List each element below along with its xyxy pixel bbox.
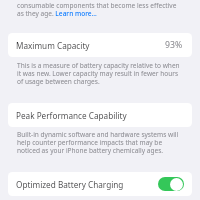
staticText: consumable components that become less e… xyxy=(17,2,177,18)
button[interactable]: Optimized Battery Charging, on xyxy=(158,177,184,191)
staticText: Maximum Capacity xyxy=(16,40,90,51)
button[interactable]: Peak Performance Capability xyxy=(8,103,192,127)
staticText: Built-in dynamic software and hardware s… xyxy=(17,131,182,155)
button[interactable]: Maximum Capacity xyxy=(8,33,192,57)
staticText: 93% xyxy=(165,39,183,51)
button[interactable]: Optimized Battery Charging xyxy=(8,172,192,196)
staticText: Peak Performance Capability xyxy=(16,110,127,121)
staticText: Optimized Battery Charging xyxy=(16,179,124,190)
staticText: This is a measure of battery capacity re… xyxy=(17,62,182,86)
